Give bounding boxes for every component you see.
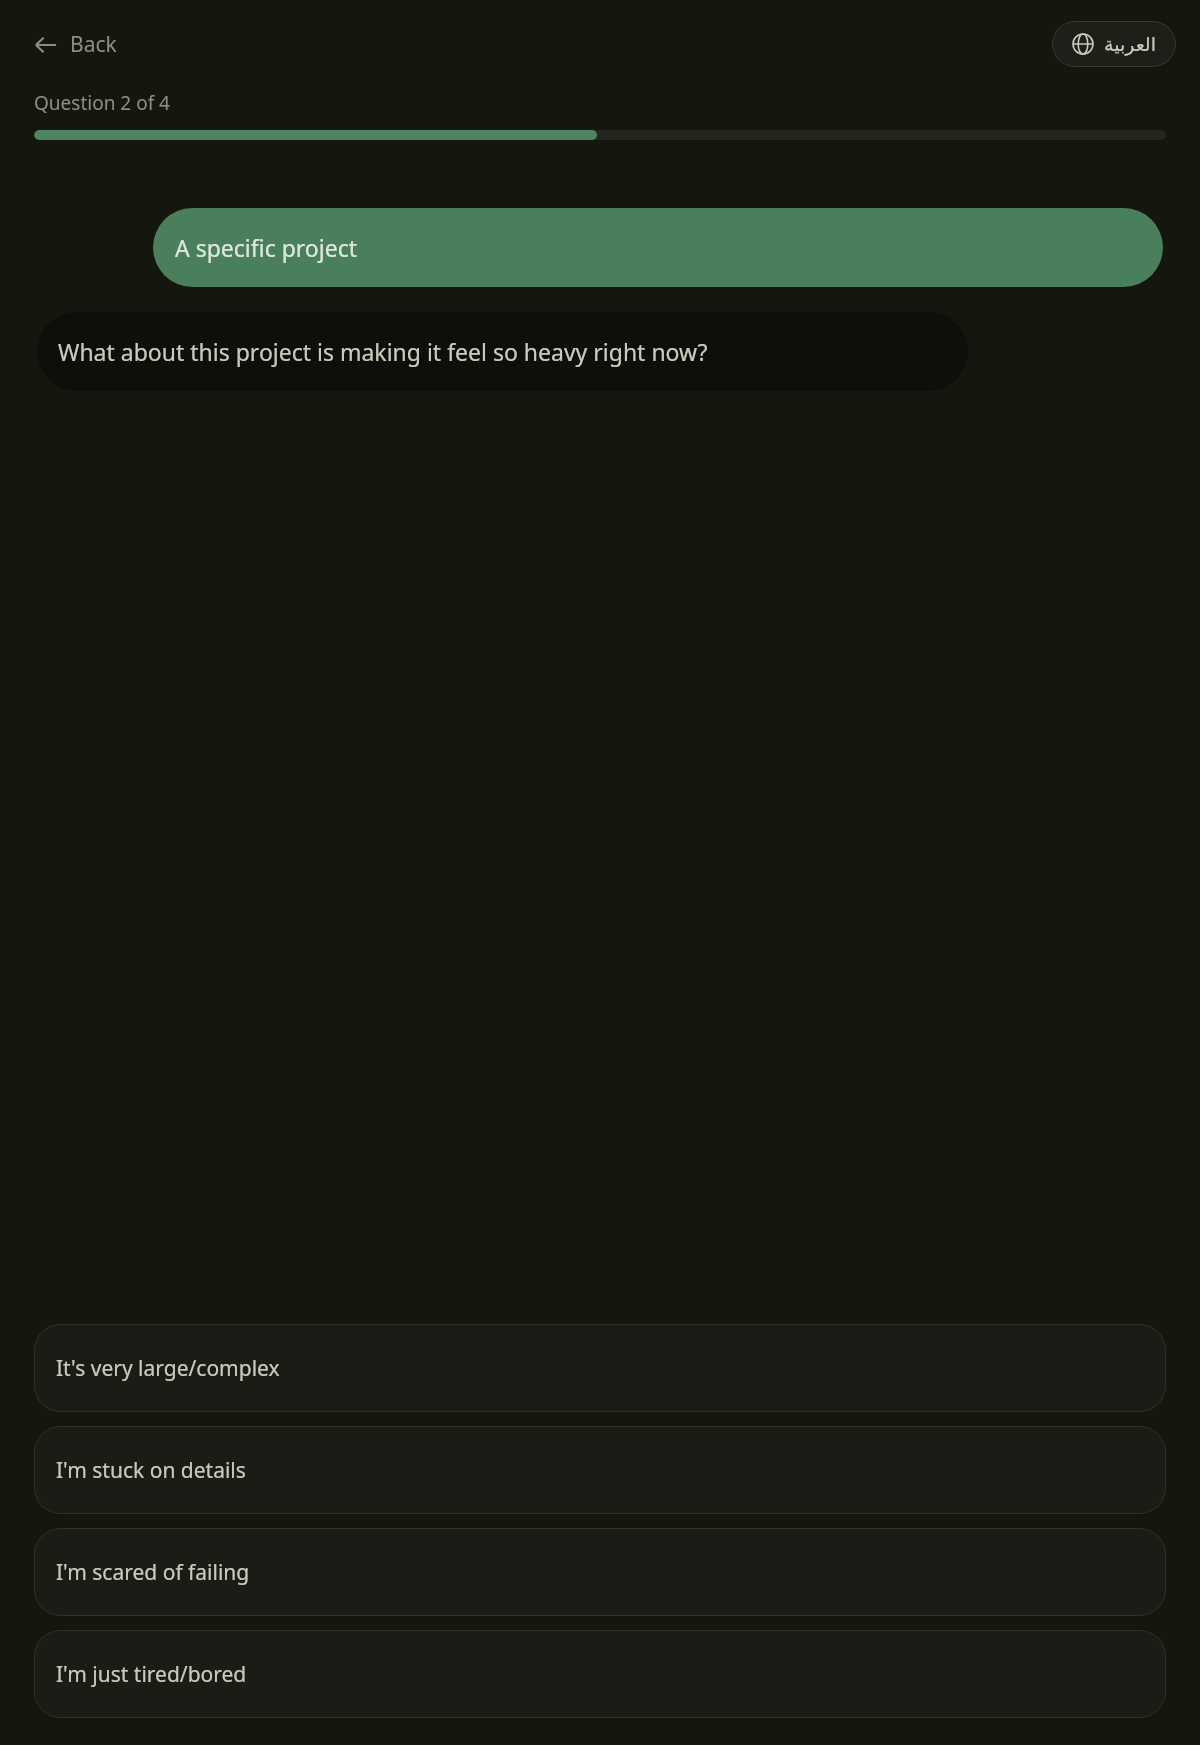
staticText: A specific project [175,232,357,263]
staticText: Back [70,30,117,59]
staticText: Question 2 of 4 [34,90,170,116]
button[interactable]: It's very large/complex [34,1324,1166,1412]
button[interactable]: I'm scared of failing [34,1528,1166,1616]
button[interactable]: A specific project [153,208,1163,287]
staticText: It's very large/complex [56,1354,280,1383]
staticText: I'm stuck on details [56,1456,246,1485]
staticText: I'm scared of failing [56,1558,250,1587]
staticText: What about this project is making it fee… [58,336,708,367]
button[interactable]: I'm stuck on details [34,1426,1166,1514]
button[interactable]: I'm just tired/bored [34,1630,1166,1718]
staticText: العربية [1104,33,1156,55]
button[interactable]: What about this project is making it fee… [37,312,968,391]
button[interactable]: Back [24,22,127,67]
button[interactable]: Switch language to Arabic [1052,21,1176,67]
staticText: I'm just tired/bored [56,1660,247,1689]
